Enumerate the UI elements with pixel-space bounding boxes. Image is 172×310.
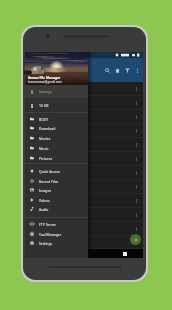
staticText: Videos bbox=[39, 198, 50, 203]
button[interactable] bbox=[25, 222, 143, 236]
button[interactable]: Home bbox=[112, 58, 122, 82]
button[interactable]: More options bbox=[132, 58, 142, 82]
staticText: Images bbox=[39, 188, 52, 193]
button[interactable] bbox=[25, 96, 143, 110]
staticText: Download bbox=[39, 126, 56, 131]
button[interactable] bbox=[25, 236, 143, 249]
button[interactable]: FTP Server bbox=[25, 219, 88, 229]
button[interactable]: Tool Manager bbox=[25, 229, 88, 239]
button[interactable] bbox=[25, 138, 143, 152]
staticText: FTP Server bbox=[39, 222, 57, 227]
button[interactable]: Storage bbox=[25, 85, 88, 98]
button[interactable]: Movies bbox=[25, 133, 88, 143]
staticText: Quick Access bbox=[39, 169, 60, 174]
button[interactable]: 16 GB bbox=[25, 100, 88, 111]
button[interactable]: Home bbox=[77, 249, 91, 258]
button[interactable]: Download bbox=[25, 123, 88, 133]
button[interactable]: Recent Files bbox=[25, 176, 88, 186]
staticText: Storage bbox=[39, 89, 52, 94]
button[interactable]: Videos bbox=[25, 195, 88, 205]
button[interactable] bbox=[25, 82, 143, 96]
button[interactable]: Search bbox=[102, 58, 112, 82]
button[interactable]: Images bbox=[25, 185, 88, 195]
staticText: Audio bbox=[39, 207, 49, 212]
button[interactable] bbox=[25, 194, 143, 208]
staticText: Music bbox=[39, 146, 49, 151]
staticText: Movies bbox=[39, 136, 51, 141]
button[interactable]: Settings bbox=[25, 238, 88, 248]
button[interactable] bbox=[25, 124, 143, 138]
button[interactable] bbox=[25, 152, 143, 166]
button[interactable] bbox=[25, 166, 143, 180]
button[interactable]: Audio bbox=[25, 204, 88, 214]
staticText: Pictures bbox=[39, 156, 53, 161]
button[interactable]: Add new bbox=[130, 234, 141, 245]
staticText: Settings bbox=[39, 241, 53, 246]
button[interactable]: ROOT bbox=[25, 114, 88, 124]
staticText: ROOT bbox=[39, 117, 49, 122]
button[interactable]: Music bbox=[25, 143, 88, 153]
staticText: Tool Manager bbox=[39, 232, 62, 237]
staticText: Recent Files bbox=[39, 179, 59, 184]
button[interactable] bbox=[25, 208, 143, 222]
button[interactable] bbox=[25, 180, 143, 194]
button[interactable]: Quick Access bbox=[25, 166, 88, 176]
staticText: 16 GB bbox=[39, 103, 49, 108]
staticText: teamamaze@gmail.com bbox=[28, 80, 62, 84]
button[interactable]: Recent apps bbox=[118, 249, 132, 258]
button[interactable]: Sort bbox=[122, 58, 132, 82]
button[interactable] bbox=[25, 110, 143, 124]
staticText: Amaze File Manager bbox=[28, 76, 61, 80]
button[interactable]: Pictures bbox=[25, 153, 88, 163]
